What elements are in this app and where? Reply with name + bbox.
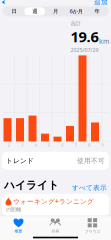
staticText: 日 [11,8,16,15]
staticText: 8 [88,142,90,148]
staticText: トレンド [6,157,34,165]
staticText: 使用不可 [77,157,105,165]
staticText: 9 [101,142,103,148]
button[interactable]: 追加 [94,0,111,5]
staticText: 6 [61,142,63,148]
staticText: 3 [21,142,23,148]
staticText: 週 [32,8,37,15]
staticText: 2025/07/29 [70,46,98,53]
staticText: ウォーキング+ランニング [13,197,94,206]
staticText: 2 [8,142,10,148]
staticText: 概要 [14,229,22,234]
button[interactable]: ブラウズ [74,216,111,235]
button[interactable]: 月 [45,7,66,15]
button[interactable]: ウォーキング+ランニング [2,194,109,216]
button[interactable]: すべて表示 [72,184,107,192]
button[interactable]: 戻る [0,0,12,5]
staticText: すべて表示 [72,184,107,192]
staticText: 追加 [94,0,108,6]
staticText: 5 [48,142,50,148]
staticText: 6か月 [70,8,83,15]
staticText: の距離 [6,206,21,213]
button[interactable]: 日 [3,7,24,15]
staticText: 月 [53,8,58,15]
staticText: ブラウズ [84,229,100,234]
staticText: 4 [34,142,36,148]
staticText: 合計 [70,20,80,27]
staticText: 年 [95,8,100,15]
button[interactable]: トレンド [2,152,109,170]
staticText: 共有 [51,229,59,234]
staticText: 7 [75,142,77,148]
staticText: km [99,37,109,46]
button[interactable]: 年 [87,7,107,15]
button[interactable]: 共有 [37,216,74,235]
button[interactable]: 6か月 [66,7,87,15]
staticText: 19.6 [70,27,98,46]
button[interactable]: 概要 [0,216,37,235]
staticText: ハイライト [4,179,59,192]
button[interactable]: 週 [24,7,45,15]
